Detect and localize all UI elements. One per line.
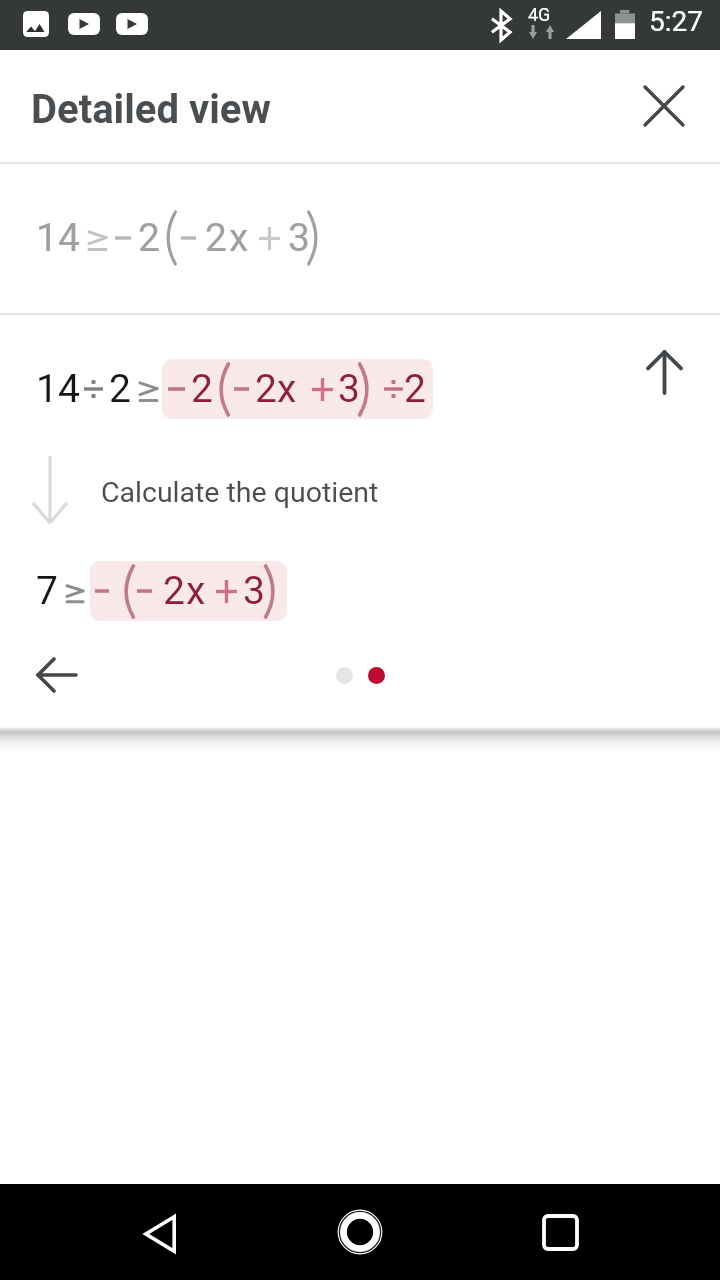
staticText: 7 xyxy=(36,568,58,614)
button[interactable]: Close xyxy=(626,68,702,144)
staticText: 2 xyxy=(163,568,185,614)
staticText: 2 xyxy=(191,366,213,412)
staticText: 2 xyxy=(109,366,131,412)
staticText: 14 xyxy=(36,215,80,261)
staticText: 3 xyxy=(338,366,360,412)
button[interactable]: Recents xyxy=(512,1184,608,1280)
staticText: 2 xyxy=(205,215,227,261)
staticText: 2 xyxy=(138,215,160,261)
staticText: x xyxy=(229,215,249,261)
button[interactable]: Back xyxy=(16,635,96,715)
staticText: 2 xyxy=(404,366,426,412)
staticText: x xyxy=(186,568,206,614)
button[interactable]: Back xyxy=(112,1186,208,1280)
staticText: 2 xyxy=(255,366,277,412)
staticText: Detailed view xyxy=(31,86,271,133)
staticText: 3 xyxy=(243,568,265,614)
staticText: x xyxy=(277,366,297,412)
staticText: 4G xyxy=(528,4,551,25)
button[interactable]: Home xyxy=(312,1184,408,1280)
button[interactable]: Previous step xyxy=(624,332,704,412)
staticText: 5:27 xyxy=(649,5,703,38)
staticText: 3 xyxy=(288,215,310,261)
staticText: Calculate the quotient xyxy=(101,476,379,509)
staticText: 14 xyxy=(36,366,80,412)
